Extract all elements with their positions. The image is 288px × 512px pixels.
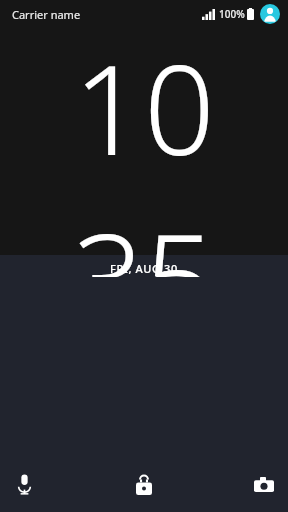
button[interactable]: Camera bbox=[192, 456, 288, 512]
button[interactable]: User profile bbox=[260, 4, 280, 24]
staticText: Carrier name bbox=[12, 7, 81, 22]
staticText: 100% bbox=[219, 7, 245, 21]
button[interactable]: Lock bbox=[96, 456, 192, 512]
button[interactable]: Voice assist bbox=[0, 456, 96, 512]
staticText: FRI, AUG 30 bbox=[110, 261, 178, 276]
staticText: 10 bbox=[73, 22, 215, 191]
staticText: 35 bbox=[73, 191, 215, 277]
